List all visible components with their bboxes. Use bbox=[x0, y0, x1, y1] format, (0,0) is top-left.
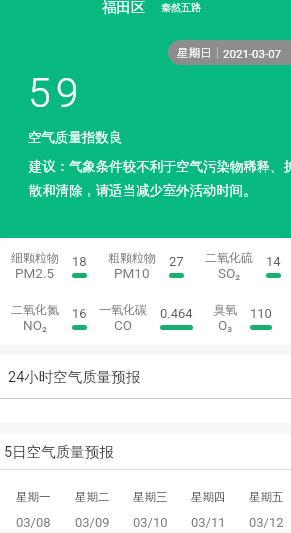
button[interactable]: 细颗粒物 bbox=[0, 250, 97, 281]
staticText: 秦然五路 bbox=[161, 1, 201, 14]
staticText: 星期日 bbox=[177, 46, 212, 60]
staticText: 细颗粒物 bbox=[11, 250, 59, 265]
staticText: 03/09 bbox=[75, 515, 110, 530]
staticText: 星期三 bbox=[133, 490, 168, 504]
staticText: 03/10 bbox=[133, 515, 168, 530]
button[interactable]: 星期五 bbox=[237, 470, 291, 530]
staticText: 粗颗粒物 bbox=[108, 250, 156, 265]
staticText: NO₂ bbox=[23, 317, 47, 333]
staticText: PM2.5 bbox=[15, 265, 55, 281]
button[interactable]: 粗颗粒物 bbox=[97, 250, 194, 281]
staticText: 建议：气象条件较不利于空气污染物稀释、扩散和清除，请适当减少室外活动时间。 bbox=[29, 158, 291, 199]
button[interactable]: 5日空气质量预报 bbox=[0, 434, 291, 469]
button[interactable]: 星期一 bbox=[4, 470, 63, 530]
staticText: SO₂ bbox=[218, 265, 241, 281]
staticText: 03/12 bbox=[249, 515, 284, 530]
button[interactable]: 24小时空气质量预报 bbox=[0, 355, 291, 398]
button[interactable]: 二氧化硫 bbox=[194, 250, 291, 281]
staticText: 星期一 bbox=[16, 490, 51, 504]
staticText: 14 bbox=[266, 254, 281, 269]
staticText: 16 bbox=[72, 306, 87, 321]
staticText: 星期二 bbox=[75, 490, 110, 504]
staticText: 一氧化碳 bbox=[99, 302, 147, 317]
staticText: 03/11 bbox=[191, 515, 226, 530]
staticText: O₃ bbox=[218, 317, 233, 333]
button[interactable]: 星期三 bbox=[121, 470, 179, 530]
button[interactable]: 星期四 bbox=[179, 470, 237, 530]
button[interactable]: 福田区 bbox=[6, 0, 291, 16]
staticText: 星期四 bbox=[191, 490, 226, 504]
button[interactable]: 二氧化氮 bbox=[0, 302, 97, 333]
button[interactable]: 星期日 bbox=[168, 40, 291, 65]
staticText: 0.464 bbox=[160, 306, 193, 321]
button[interactable]: 星期二 bbox=[63, 470, 121, 530]
staticText: 二氧化氮 bbox=[11, 302, 59, 317]
staticText: 臭氧 bbox=[213, 302, 237, 317]
staticText: 18 bbox=[72, 254, 87, 269]
button[interactable]: 臭氧 bbox=[194, 302, 291, 333]
staticText: 24小时空气质量预报 bbox=[8, 368, 141, 386]
button[interactable]: 一氧化碳 bbox=[97, 302, 194, 333]
staticText: 福田区 bbox=[102, 0, 146, 16]
staticText: 2021-03-07 bbox=[223, 47, 282, 60]
staticText: 03/08 bbox=[16, 515, 51, 530]
staticText: CO bbox=[114, 317, 133, 333]
staticText: 二氧化硫 bbox=[205, 250, 253, 265]
staticText: 5日空气质量预报 bbox=[4, 443, 114, 461]
staticText: 59 bbox=[28, 69, 84, 117]
staticText: 27 bbox=[169, 254, 184, 269]
staticText: 110 bbox=[250, 306, 272, 321]
staticText: 星期五 bbox=[249, 490, 284, 504]
staticText: PM10 bbox=[114, 265, 150, 281]
staticText: 空气质量指数良 bbox=[28, 129, 123, 146]
